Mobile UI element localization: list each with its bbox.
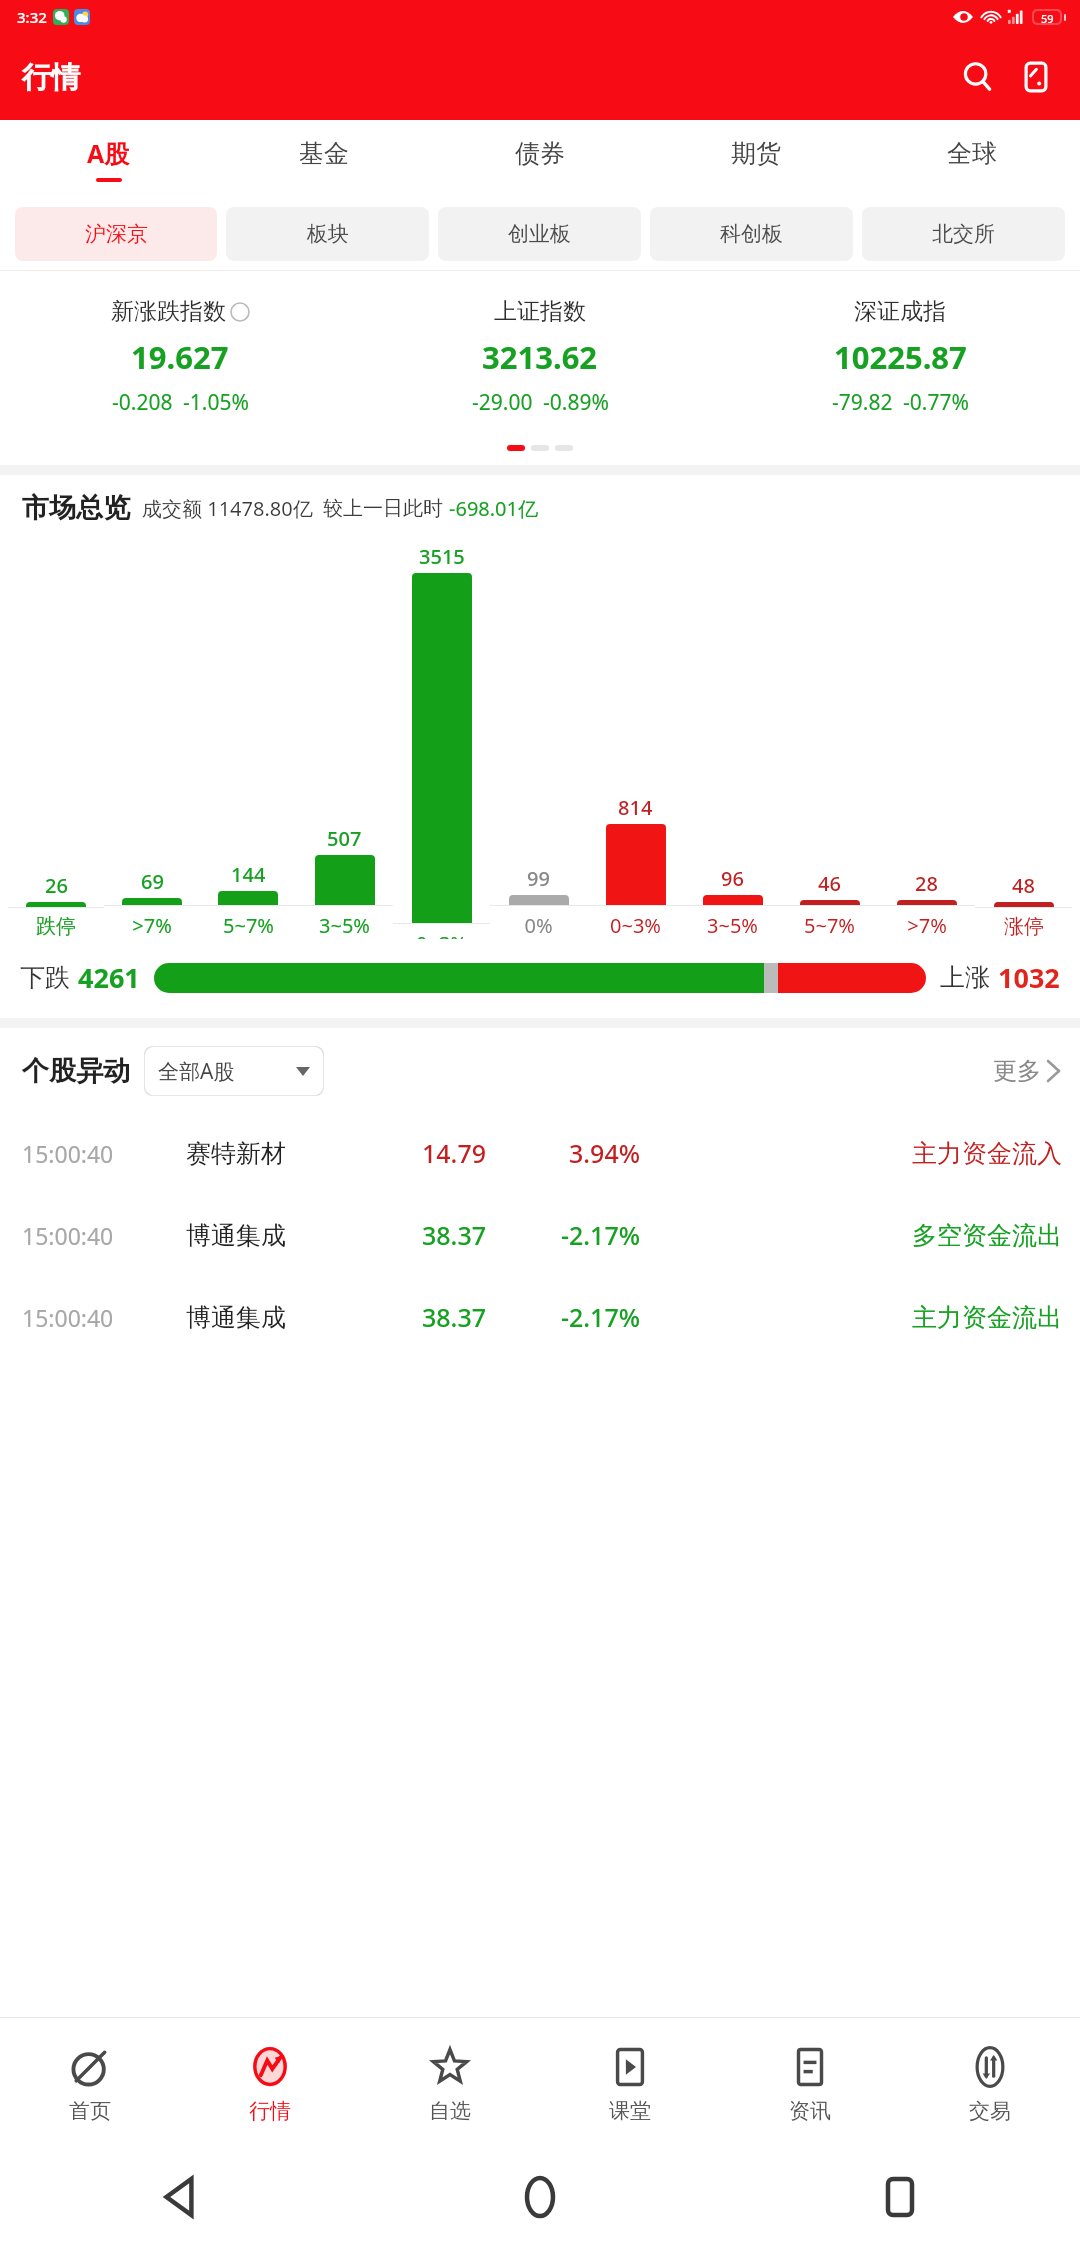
button[interactable]: 行情	[180, 2018, 360, 2150]
button[interactable]: Back	[145, 2162, 215, 2232]
button[interactable]: 15:00:40	[22, 1112, 1062, 1194]
staticText: 全球	[947, 138, 997, 169]
staticText: 深证成指	[854, 297, 946, 326]
button[interactable]: A股	[0, 120, 216, 198]
staticText: 上涨	[940, 962, 990, 993]
staticText: -2.17%	[500, 1300, 640, 1334]
staticText: 99	[527, 865, 550, 892]
staticText: 69	[141, 868, 164, 895]
staticText: 博通集成	[186, 1220, 346, 1251]
staticText: 全部A股	[158, 1057, 235, 1086]
button[interactable]: 全球	[864, 120, 1080, 198]
staticText: 沪深京	[85, 221, 148, 247]
button[interactable]: 15:00:40	[22, 1276, 1062, 1358]
staticText: 新涨跌指数	[111, 297, 226, 326]
staticText: 主力资金流出	[912, 1302, 1062, 1333]
staticText: 48	[1012, 872, 1035, 899]
staticText: 北交所	[932, 221, 995, 247]
button[interactable]: 债券	[432, 120, 648, 198]
button[interactable]: 基金	[216, 120, 432, 198]
staticText: 个股异动	[22, 1054, 130, 1088]
button[interactable]: 首页	[0, 2018, 180, 2150]
button[interactable]: 课堂	[540, 2018, 720, 2150]
button[interactable]: Recents	[865, 2162, 935, 2232]
staticText: 14.79	[346, 1136, 486, 1170]
staticText: 19.627	[131, 336, 229, 378]
staticText: 跌停	[36, 914, 76, 939]
staticText: 3:32	[17, 7, 47, 27]
button[interactable]: 交易	[900, 2018, 1080, 2150]
button[interactable]: 全部A股	[144, 1046, 324, 1096]
staticText: 首页	[69, 2098, 111, 2124]
button[interactable]: 更多	[993, 1056, 1060, 1086]
staticText: 15:00:40	[22, 1138, 172, 1169]
button[interactable]: Search	[952, 51, 1004, 103]
staticText: 下跌	[20, 962, 70, 993]
staticText: >7%	[132, 912, 172, 939]
staticText: -2.17%	[500, 1218, 640, 1252]
staticText: 成交额 11478.80亿	[142, 495, 313, 522]
staticText: 更多	[993, 1056, 1041, 1086]
staticText: -0.89%	[543, 388, 609, 417]
staticText: 3~5%	[319, 912, 370, 939]
staticText: 基金	[299, 138, 349, 169]
button[interactable]: 期货	[648, 120, 864, 198]
button[interactable]: 新涨跌指数	[0, 297, 360, 417]
button[interactable]: 上证指数	[360, 297, 720, 417]
staticText: -0.77%	[903, 388, 969, 417]
staticText: 期货	[731, 138, 781, 169]
staticText: 0%	[524, 912, 553, 939]
staticText: 创业板	[508, 221, 571, 247]
staticText: 上证指数	[494, 297, 586, 326]
button[interactable]: 自选	[360, 2018, 540, 2150]
staticText: 26	[45, 872, 68, 899]
button[interactable]: 创业板	[438, 207, 641, 261]
staticText: 38.37	[346, 1218, 486, 1252]
staticText: 4261	[78, 959, 140, 996]
staticText: -0.208	[112, 388, 173, 417]
staticText: 46	[818, 870, 841, 897]
staticText: A股	[87, 136, 130, 170]
button[interactable]: 深证成指	[720, 297, 1080, 417]
staticText: 较上一日此时	[323, 496, 443, 521]
staticText: 涨停	[1004, 914, 1044, 939]
staticText: >7%	[907, 912, 947, 939]
staticText: 1032	[998, 959, 1060, 996]
staticText: 28	[915, 870, 938, 897]
button[interactable]: 资讯	[720, 2018, 900, 2150]
button[interactable]: 沪深京	[15, 207, 217, 261]
button[interactable]: Trade terminal	[1010, 51, 1062, 103]
button[interactable]: 市场总览	[22, 491, 1060, 525]
button[interactable]: 下跌	[20, 959, 1060, 996]
button[interactable]: 15:00:40	[22, 1194, 1062, 1276]
staticText: 资讯	[789, 2098, 831, 2124]
staticText: 板块	[307, 221, 349, 247]
staticText: -79.82	[832, 388, 893, 417]
staticText: 96	[721, 865, 744, 892]
staticText: 科创板	[720, 221, 783, 247]
staticText: 行情	[22, 59, 80, 96]
staticText: 多空资金流出	[912, 1220, 1062, 1251]
staticText: 814	[618, 794, 653, 821]
button[interactable]: 板块	[226, 207, 429, 261]
staticText: 15:00:40	[22, 1220, 172, 1251]
staticText: 38.37	[346, 1300, 486, 1334]
staticText: 主力资金流入	[912, 1138, 1062, 1169]
staticText: 144	[231, 861, 266, 888]
staticText: 10225.87	[834, 336, 967, 378]
staticText: 5~7%	[804, 912, 855, 939]
staticText: 59	[1041, 11, 1054, 23]
staticText: -1.05%	[183, 388, 249, 417]
staticText: -29.00	[472, 388, 533, 417]
button[interactable]: Home	[505, 2162, 575, 2232]
staticText: 赛特新材	[186, 1138, 346, 1169]
staticText: 自选	[429, 2098, 471, 2124]
staticText: 债券	[515, 138, 565, 169]
button[interactable]: 北交所	[862, 207, 1065, 261]
button[interactable]: 科创板	[650, 207, 853, 261]
staticText: -698.01亿	[449, 495, 538, 522]
staticText: 课堂	[609, 2098, 651, 2124]
staticText: 3~5%	[707, 912, 758, 939]
staticText: 3.94%	[500, 1136, 640, 1170]
staticText: 市场总览	[22, 491, 130, 525]
